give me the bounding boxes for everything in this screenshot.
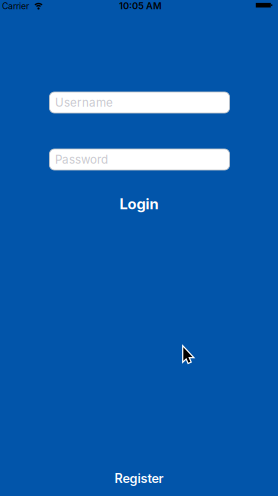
staticText: Password <box>55 152 108 166</box>
staticText: 10:05 AM <box>119 0 162 11</box>
button[interactable]: Username <box>49 92 229 113</box>
staticText: Username <box>55 95 113 109</box>
button[interactable]: Register <box>114 471 163 486</box>
staticText: Carrier <box>2 1 29 11</box>
staticText: Register <box>114 471 163 486</box>
staticText: Login <box>119 195 158 213</box>
button[interactable]: Login <box>119 195 158 213</box>
button[interactable]: Password <box>49 149 229 170</box>
